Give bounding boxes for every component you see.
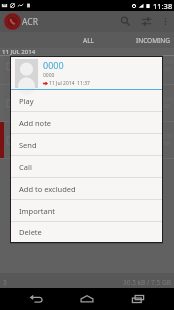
button[interactable]: Important bbox=[11, 200, 162, 222]
staticText: Add to excluded bbox=[19, 184, 76, 194]
button[interactable]: Back bbox=[19, 288, 53, 310]
staticText: 30.5 kB / 7.5 GB bbox=[123, 278, 171, 287]
staticText: 11:38 bbox=[153, 1, 173, 11]
staticText: Delete bbox=[19, 227, 42, 237]
button[interactable]: Search bbox=[115, 11, 136, 32]
staticText: 11:53 bbox=[160, 96, 173, 103]
staticText: 0:08 bbox=[160, 103, 170, 110]
staticText: 3 bbox=[3, 278, 7, 287]
staticText: 11 Jul 2014 11:37 bbox=[49, 80, 90, 87]
button[interactable]: ACR bbox=[4, 13, 38, 30]
staticText: Important bbox=[19, 206, 56, 216]
button[interactable]: Delete bbox=[11, 222, 162, 242]
staticText: 0:08 bbox=[160, 66, 170, 73]
staticText: Play bbox=[19, 96, 34, 106]
button[interactable]: ALL bbox=[70, 32, 107, 48]
button[interactable]: INCOMING bbox=[125, 32, 174, 48]
staticText: 0000 bbox=[43, 72, 55, 79]
staticText: Add note bbox=[19, 118, 52, 128]
staticText: ALL bbox=[83, 36, 94, 45]
staticText: Send bbox=[19, 140, 37, 150]
button[interactable]: Add to excluded bbox=[11, 178, 162, 200]
button[interactable]: Filter bbox=[136, 11, 157, 32]
staticText: INCOMING bbox=[136, 36, 170, 45]
button[interactable]: Add note bbox=[11, 112, 162, 134]
button[interactable]: Send bbox=[11, 134, 162, 156]
button[interactable]: Recents bbox=[121, 288, 155, 310]
button[interactable]: Call bbox=[11, 156, 162, 178]
staticText: 0:08 bbox=[160, 140, 170, 147]
staticText: 11 JUL 2014 bbox=[2, 48, 36, 56]
staticText: Call bbox=[19, 162, 32, 172]
staticText: ACR bbox=[22, 16, 38, 28]
staticText: 11:53 bbox=[160, 133, 173, 140]
staticText: 0000 bbox=[43, 59, 64, 71]
staticText: 11:53 bbox=[160, 59, 173, 66]
button[interactable]: Play bbox=[11, 90, 162, 112]
button[interactable]: Home bbox=[70, 288, 104, 310]
